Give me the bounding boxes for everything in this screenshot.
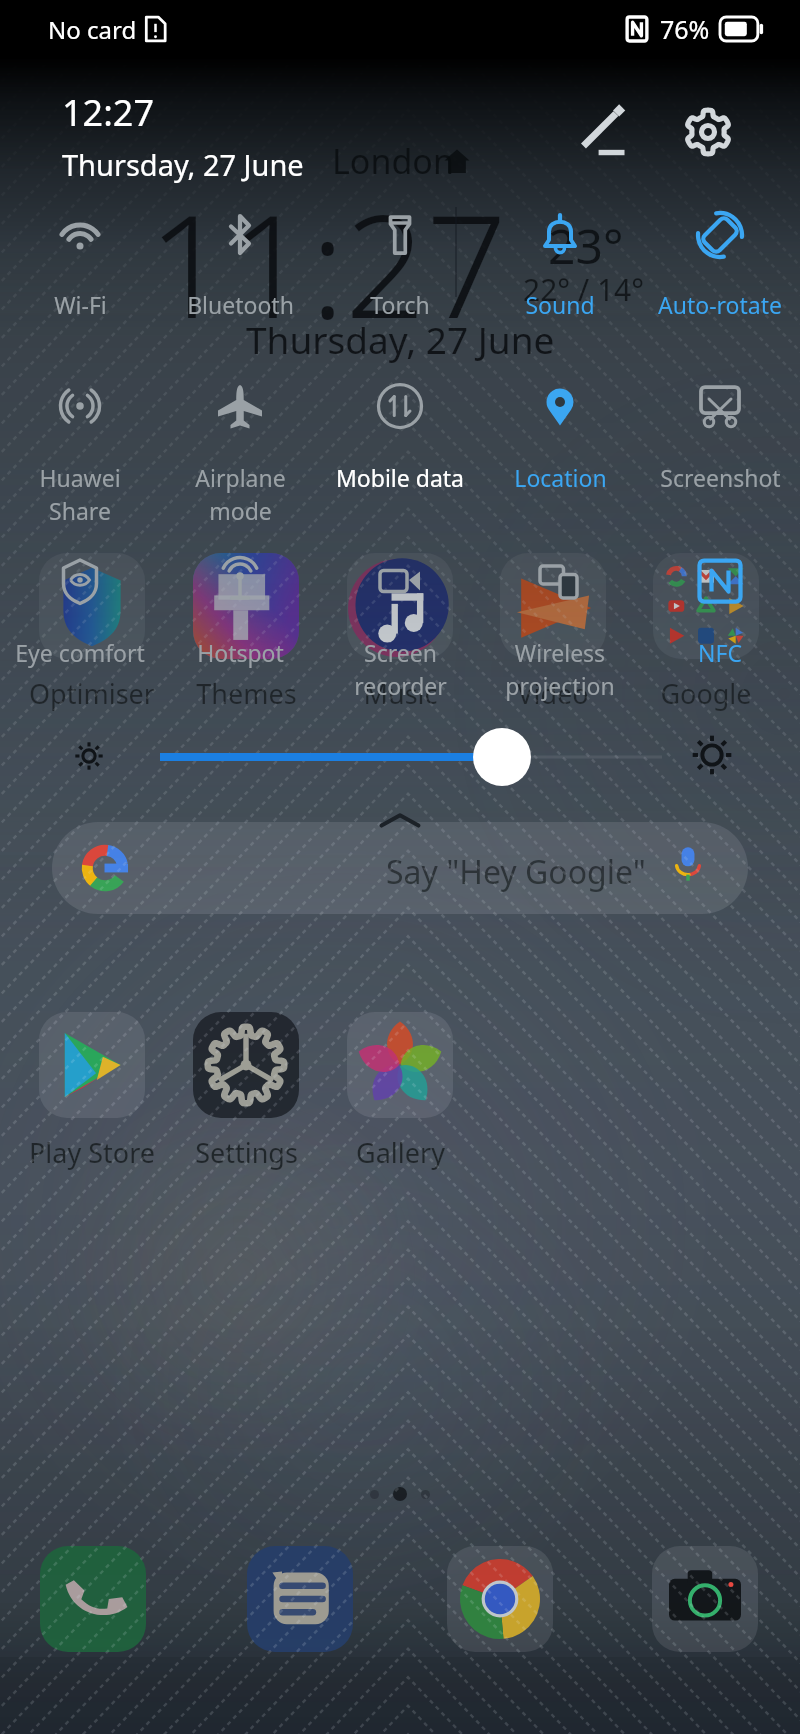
staticText: 11:27 [148, 166, 507, 359]
button[interactable] [640, 207, 800, 263]
button[interactable]: Brightness [150, 727, 662, 787]
button[interactable] [480, 378, 640, 434]
button[interactable]: Gallery [310, 1012, 490, 1171]
button[interactable] [480, 207, 640, 263]
staticText: 22° / 14° [523, 269, 645, 310]
staticText: Google [660, 675, 752, 712]
staticText: Thursday, 27 June [246, 314, 555, 364]
button[interactable] [640, 378, 800, 434]
staticText: 23° [548, 213, 624, 278]
button[interactable]: Google [616, 553, 796, 712]
staticText: Torch [370, 289, 430, 320]
staticText: Huawei Share [39, 462, 121, 527]
button[interactable] [320, 207, 480, 263]
button[interactable] [480, 553, 640, 609]
button[interactable]: Optimiser [2, 553, 182, 712]
button[interactable]: Video [463, 553, 643, 712]
staticText: Sound [525, 289, 595, 320]
button[interactable] [160, 207, 320, 263]
button[interactable] [320, 553, 480, 609]
button[interactable]: Play Store [2, 1012, 182, 1171]
staticText: Airplane mode [195, 462, 286, 527]
staticText: Themes [196, 675, 297, 712]
button[interactable]: Music [310, 553, 490, 712]
staticText: Gallery [356, 1134, 445, 1171]
staticText: Music [363, 675, 438, 712]
button[interactable]: Camera [652, 1546, 758, 1652]
staticText: Bluetooth [187, 289, 294, 320]
button[interactable] [0, 207, 160, 263]
button[interactable]: Themes [156, 553, 336, 712]
staticText: Mobile data [336, 462, 464, 493]
staticText: 12:27 [62, 88, 155, 137]
button[interactable] [0, 553, 160, 609]
staticText: 76% [660, 12, 710, 46]
staticText: Wireless projection [505, 637, 615, 702]
staticText: Play Store [29, 1134, 155, 1171]
staticText: Optimiser [29, 675, 155, 712]
button[interactable]: Phone [40, 1546, 146, 1652]
button[interactable] [320, 378, 480, 434]
staticText: Screen recorder [354, 637, 447, 702]
button[interactable] [0, 378, 160, 434]
button[interactable]: Settings [672, 96, 744, 168]
button[interactable]: Settings [156, 1012, 336, 1171]
staticText: Screenshot [660, 462, 781, 493]
button[interactable]: Edit quick settings [568, 96, 640, 168]
staticText: Video [517, 675, 589, 712]
staticText: Wi-Fi [54, 289, 107, 320]
staticText: Location [514, 462, 607, 493]
staticText: No card [48, 13, 137, 46]
button[interactable] [160, 378, 320, 434]
staticText: Eye comfort [15, 637, 145, 668]
button[interactable]: Messages [247, 1546, 353, 1652]
staticText: London [332, 138, 454, 184]
staticText: NFC [698, 637, 742, 668]
staticText: Settings [195, 1134, 298, 1171]
button[interactable] [640, 553, 800, 609]
staticText: Hotspot [197, 637, 284, 668]
button[interactable] [52, 822, 748, 914]
button[interactable]: Increase brightness [686, 729, 738, 781]
staticText: Thursday, 27 June [62, 145, 304, 184]
staticText: Auto-rotate [658, 289, 782, 320]
button[interactable]: Chrome [447, 1546, 553, 1652]
staticText: Say "Hey Google" [386, 850, 646, 894]
button[interactable]: Decrease brightness [66, 733, 112, 779]
button[interactable] [160, 553, 320, 609]
